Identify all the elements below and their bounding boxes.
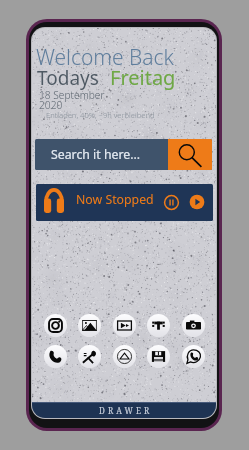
button[interactable]: WhatsApp [182,345,205,368]
staticText: Now Stopped [76,191,154,208]
button[interactable]: Gallery [78,314,101,337]
button[interactable]: Telekom [147,314,170,337]
staticText: Entladen, 40%, ~9h verbleibend [46,110,155,120]
staticText: 18 September [39,88,105,102]
button[interactable]: Search it here... [35,139,212,170]
button[interactable]: Maps [78,345,101,368]
button[interactable]: Phone [44,345,67,368]
button[interactable]: Now Stopped [36,184,213,221]
button[interactable]: DRAWER [32,402,216,418]
staticText: Search it here... [51,146,168,163]
button[interactable]: Instagram [44,314,67,337]
button[interactable]: Save [147,345,170,368]
button[interactable]: Upload [113,345,136,368]
staticText: Freitag [110,64,176,91]
staticText: 2020 [39,98,63,112]
staticText: DRAWER [99,405,153,416]
staticText: Welcome Back [36,43,174,72]
button[interactable]: Video Player [113,314,136,337]
staticText: Todays [37,65,99,91]
button[interactable]: Camera [182,314,205,337]
